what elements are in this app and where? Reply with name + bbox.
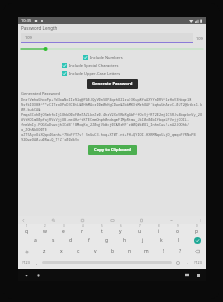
button[interactable]: n [121,246,138,257]
staticText: c [77,248,80,255]
button[interactable]: ! [155,246,172,257]
staticText: f [88,237,90,244]
button[interactable]: d [62,235,80,246]
button[interactable]: 4 [73,224,92,235]
button[interactable]: s [44,235,62,246]
button[interactable]: 1 [18,224,36,235]
button[interactable]: Home [34,271,42,279]
button[interactable]: More options [197,217,204,224]
button[interactable]: Minimize [168,217,175,224]
staticText: Include Special Characters [69,63,119,68]
button[interactable]: Password length slider [21,46,203,52]
staticText: e [62,228,65,235]
staticText: 1 [26,224,28,228]
staticText: g [105,237,109,244]
staticText: v [94,248,97,255]
button[interactable]: 109 [21,33,193,43]
button[interactable]: Include Numbers [83,55,123,60]
staticText: Generated Password [21,91,61,96]
staticText: 5 [101,224,103,228]
staticText: q [25,228,29,235]
button[interactable]: Backspace [189,246,206,257]
button[interactable]: Emoji [172,257,183,268]
button[interactable]: g [98,235,116,246]
staticText: l [178,237,180,244]
button[interactable]: f [80,235,98,246]
staticText: z [43,248,46,255]
button[interactable]: j [134,235,152,246]
staticText: p [195,228,199,235]
staticText: 6 [120,224,122,228]
button[interactable]: 3 [54,224,73,235]
button[interactable]: k [152,235,170,246]
button[interactable]: Shift [18,246,36,257]
button[interactable]: Keyboard [183,271,191,279]
button[interactable]: Search [50,217,57,224]
staticText: r [81,228,84,235]
button[interactable]: Include Upper-Case Letters [62,71,121,76]
button[interactable]: Recents [194,271,202,279]
button[interactable]: Back [20,217,27,224]
button[interactable]: 8 [149,224,168,235]
staticText: i [158,228,160,235]
staticText: Include Upper-Case Letters [69,71,121,76]
staticText: 2 [44,224,46,228]
staticText: . [187,260,189,266]
button[interactable]: 9 [168,224,187,235]
staticText: 7 [139,224,141,228]
staticText: 109 [196,36,203,41]
button[interactable]: ?123 [20,257,32,268]
button[interactable]: l [170,235,188,246]
button[interactable]: 0 [187,224,206,235]
button[interactable]: 5 [92,224,111,235]
button[interactable]: v [87,246,104,257]
staticText: Password Length [21,25,58,31]
button[interactable]: 2 [36,224,54,235]
button[interactable]: Comma [32,257,42,268]
staticText: u [138,228,142,235]
staticText: Generate Password [92,81,133,87]
staticText: k [160,237,163,244]
button[interactable]: Generate Password [87,79,138,89]
staticText: n [128,248,132,255]
button[interactable]: Stickers [79,217,86,224]
button[interactable]: m [138,246,155,257]
button[interactable]: b [104,246,121,257]
staticText: x [60,248,63,255]
button[interactable]: c [70,246,87,257]
staticText: s [52,237,55,244]
button[interactable]: ? [172,246,189,257]
button[interactable]: 7 [130,224,149,235]
staticText: m [144,248,149,255]
button[interactable]: 6 [111,224,130,235]
staticText: 4 [82,224,84,228]
staticText: ? [179,248,182,255]
staticText: ?123 [22,260,30,265]
staticText: 9 [177,224,179,228]
staticText: 10:35 [21,18,32,23]
button[interactable]: Copy to Clipboard [88,145,137,155]
button[interactable]: Enter [188,235,206,246]
staticText: a [34,237,37,244]
button[interactable]: z [36,246,53,257]
button[interactable]: Back [22,271,30,279]
staticText: 109 [25,35,32,40]
staticText: Include Numbers [90,55,123,60]
staticText: 3 [63,224,65,228]
staticText: b [111,248,115,255]
staticText: Dnr\VmhaGhoxPp+!W3owNoIIr%lq@PA$JQyV0nSO… [21,97,203,142]
button[interactable]: Include Special Characters [62,63,119,68]
staticText: ! [163,248,165,255]
button[interactable]: GIF [109,217,116,224]
staticText: Copy to Clipboard [94,147,131,153]
button[interactable]: a [26,235,44,246]
button[interactable]: h [116,235,134,246]
staticText: w [43,228,47,235]
staticText: 0 [196,224,198,228]
staticText: d [69,237,73,244]
button[interactable]: ?123 [192,257,204,268]
button[interactable]: Clipboard [138,217,145,224]
button[interactable]: x [53,246,70,257]
